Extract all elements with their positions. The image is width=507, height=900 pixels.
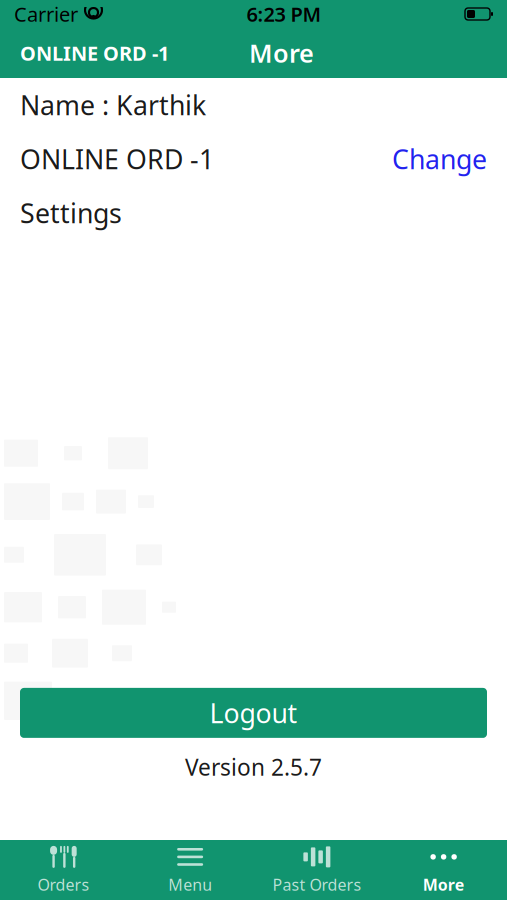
staticText: Change [392,141,487,177]
button[interactable]: More [380,839,507,900]
staticText: Version 2.5.7 [185,752,322,782]
staticText: Logout [209,695,297,731]
staticText: More [423,874,465,895]
staticText: Settings [20,195,122,231]
staticText: Orders [37,874,89,895]
staticText: More [249,36,314,70]
staticText: Carrier [14,1,78,27]
button[interactable]: Orders [0,839,127,900]
button[interactable]: Name : Karthik [0,78,507,132]
staticText: Past Orders [272,874,361,895]
button[interactable]: Past Orders [253,839,380,900]
button[interactable]: Logout [20,688,487,738]
staticText: ONLINE ORD -1 [20,40,169,66]
button[interactable]: ONLINE ORD -1 [0,132,507,186]
staticText: 6:23 PM [246,1,321,27]
button[interactable]: Settings [0,186,507,240]
button[interactable]: Menu [127,839,254,900]
staticText: Name : Karthik [20,87,206,123]
staticText: ONLINE ORD -1 [20,141,214,177]
staticText: Menu [168,874,212,895]
